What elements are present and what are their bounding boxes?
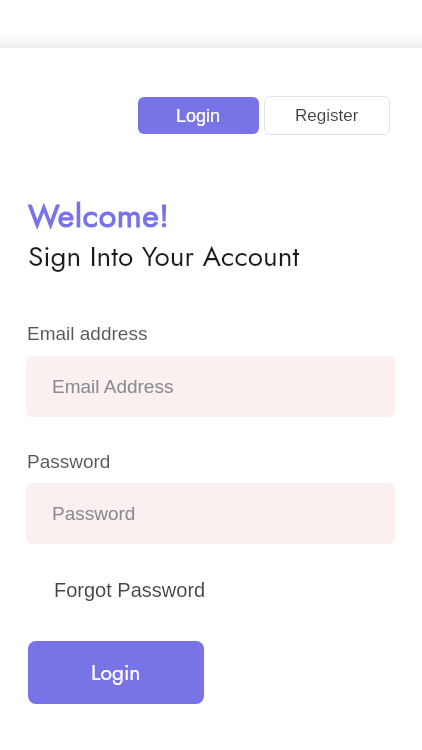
staticText: Email address	[27, 323, 148, 344]
button[interactable]: Register	[264, 96, 390, 135]
button[interactable]: Email Address	[26, 356, 395, 417]
staticText: Login	[91, 658, 141, 688]
staticText: Sign Into Your Account	[28, 236, 300, 276]
staticText: Email Address	[52, 376, 174, 397]
button[interactable]: Login	[28, 641, 204, 704]
staticText: Welcome!	[28, 193, 170, 239]
button[interactable]: Login	[138, 97, 259, 134]
button[interactable]: Forgot Password	[54, 579, 206, 601]
staticText: Login	[176, 106, 221, 126]
button[interactable]: Password	[26, 483, 395, 544]
staticText: Password	[27, 451, 111, 472]
staticText: Register	[295, 106, 359, 125]
staticText: Password	[52, 503, 136, 524]
